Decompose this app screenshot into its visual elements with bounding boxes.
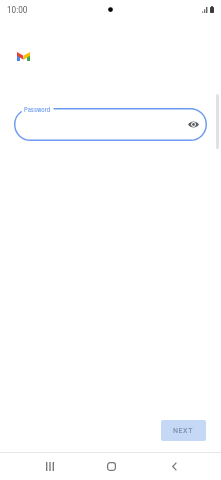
staticText: NEXT bbox=[173, 427, 194, 435]
button[interactable]: Password bbox=[14, 108, 207, 141]
staticText: Password bbox=[24, 106, 50, 114]
button[interactable]: Back bbox=[162, 454, 186, 478]
button[interactable]: Recent apps bbox=[38, 454, 62, 478]
staticText: 10:00 bbox=[7, 5, 28, 15]
button[interactable]: Show password bbox=[185, 116, 201, 132]
button[interactable]: NEXT bbox=[161, 420, 206, 441]
button[interactable]: Home bbox=[99, 454, 123, 478]
